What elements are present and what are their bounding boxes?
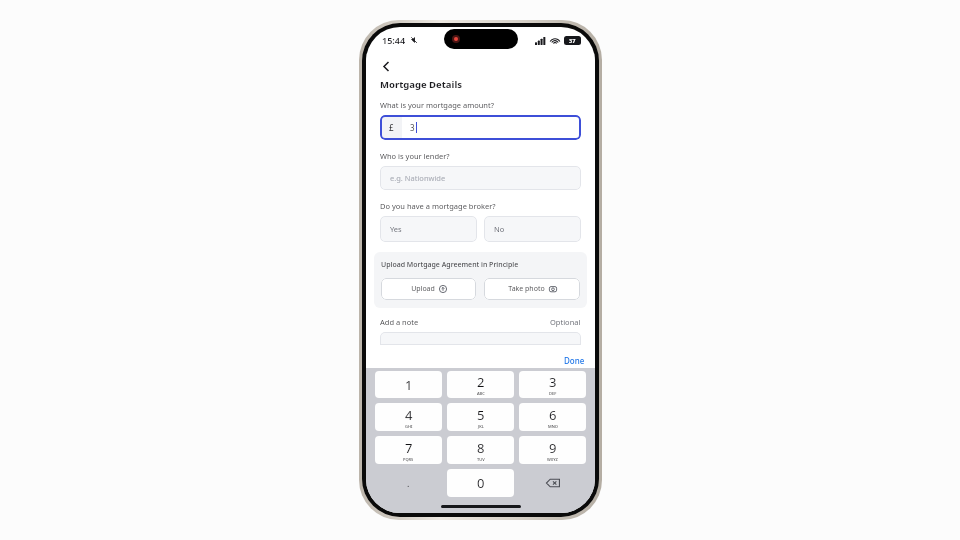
staticText: Yes (390, 224, 402, 234)
button[interactable]: 7 (375, 436, 442, 464)
staticText: Done (564, 355, 585, 366)
staticText: DEF (549, 391, 557, 396)
staticText: What is your mortgage amount? (380, 100, 494, 110)
staticText: 8 (477, 439, 485, 457)
staticText: Do you have a mortgage broker? (380, 201, 496, 211)
staticText: 6 (549, 406, 557, 424)
button[interactable]: £ (380, 115, 581, 140)
staticText: MNO (548, 424, 558, 429)
staticText: Upload (411, 284, 435, 294)
staticText: Take photo (508, 284, 545, 294)
staticText: 37 (569, 37, 576, 44)
staticText: e.g. Nationwide (390, 173, 446, 183)
staticText: 7 (405, 439, 413, 457)
button[interactable]: 1 (375, 371, 442, 398)
staticText: JKL (478, 424, 484, 429)
staticText: Optional (550, 317, 581, 327)
staticText: No (494, 224, 505, 234)
staticText: 5 (477, 406, 485, 424)
staticText: Who is your lender? (380, 151, 450, 161)
staticText: PQRS (403, 457, 414, 462)
staticText: £ (389, 122, 394, 133)
staticText: 0 (477, 474, 485, 492)
staticText: 3 (410, 122, 415, 133)
button[interactable]: Yes (380, 216, 477, 242)
staticText: 4 (405, 406, 413, 424)
button[interactable]: 6 (519, 403, 586, 431)
staticText: 15:44 (382, 34, 406, 46)
staticText: 9 (549, 439, 557, 457)
button[interactable]: 9 (519, 436, 586, 464)
button[interactable] (380, 332, 581, 345)
staticText: 1 (405, 376, 413, 394)
button[interactable]: Take photo (484, 278, 580, 300)
button[interactable]: Upload (381, 278, 476, 300)
staticText: Upload Mortgage Agreement in Principle (381, 260, 519, 270)
button[interactable]: Back (376, 56, 396, 76)
staticText: 2 (477, 373, 485, 391)
staticText: ABC (477, 391, 485, 396)
button[interactable]: 3 (519, 371, 586, 398)
button[interactable]: Done (554, 353, 595, 368)
button[interactable]: e.g. Nationwide (380, 166, 581, 190)
staticText: Mortgage Details (380, 78, 462, 91)
button[interactable]: Backspace (519, 469, 586, 497)
button[interactable]: No (484, 216, 581, 242)
button[interactable]: 5 (447, 403, 514, 431)
staticText: Add a note (380, 317, 419, 327)
button[interactable]: 2 (447, 371, 514, 398)
button[interactable]: 8 (447, 436, 514, 464)
staticText: WXYZ (547, 457, 558, 462)
staticText: 3 (549, 373, 557, 391)
staticText: . (407, 477, 410, 489)
button[interactable]: 4 (375, 403, 442, 431)
staticText: GHI (405, 424, 413, 429)
button[interactable]: 0 (447, 469, 514, 497)
staticText: TUV (477, 457, 485, 462)
